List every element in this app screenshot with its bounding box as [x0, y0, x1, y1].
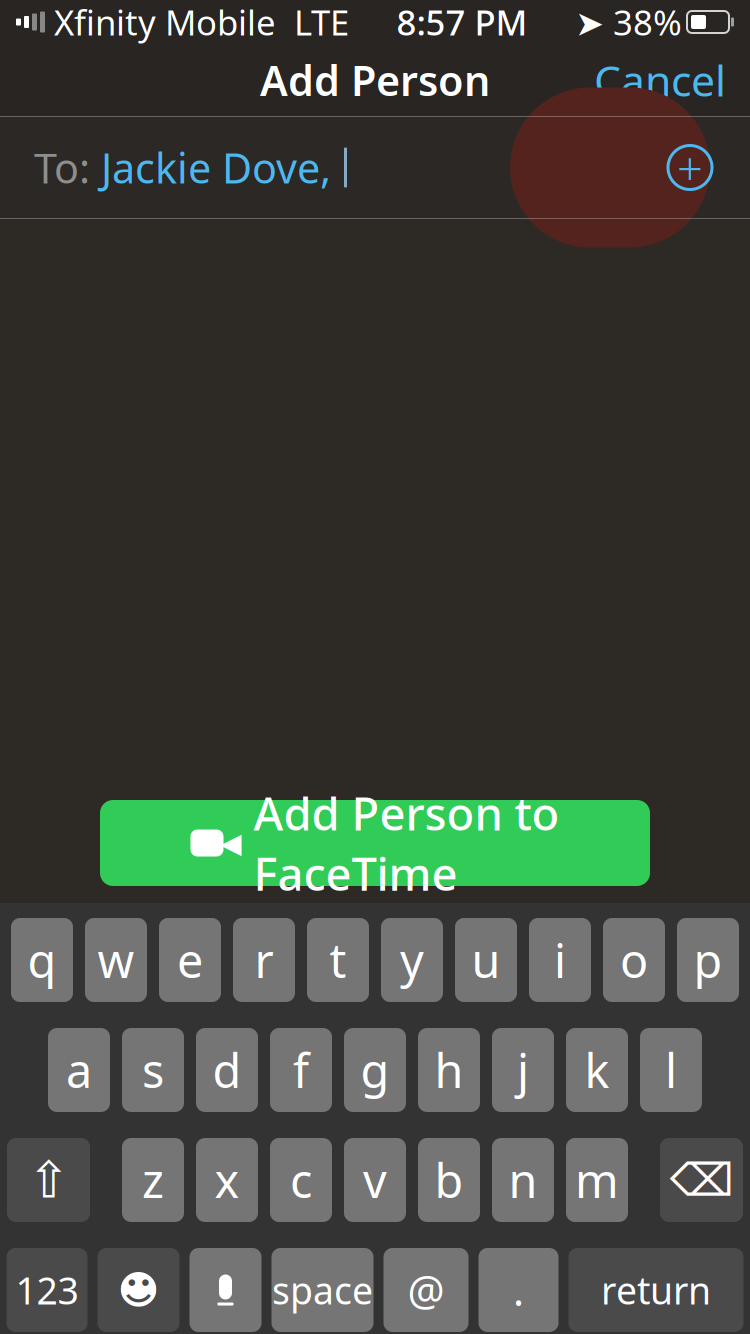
button[interactable]: ◀ — [100, 800, 650, 886]
staticText: t — [329, 929, 346, 991]
staticText: 8:57 PM — [396, 0, 527, 45]
staticText: + — [677, 137, 703, 198]
button[interactable]: w — [85, 918, 147, 1002]
staticText: ⇧ — [27, 1151, 69, 1209]
staticText: c — [290, 1149, 312, 1211]
button[interactable]: u — [455, 918, 517, 1002]
staticText: w — [97, 929, 134, 991]
staticText: i — [554, 929, 566, 991]
staticText: z — [142, 1149, 164, 1211]
staticText: e — [177, 929, 203, 991]
staticText: s — [142, 1039, 164, 1101]
staticText: Cancel — [594, 52, 726, 108]
staticText: g — [360, 1039, 389, 1101]
staticText: . — [513, 1263, 524, 1317]
staticText: Add Person to FaceTime — [253, 783, 559, 903]
button[interactable]: x — [196, 1138, 258, 1222]
staticText: r — [254, 929, 273, 991]
staticText: Jackie Dove, — [90, 140, 331, 195]
button[interactable]: Delete — [660, 1138, 743, 1222]
staticText: n — [508, 1149, 537, 1211]
button[interactable]: z — [122, 1138, 184, 1222]
staticText: Add Person — [260, 53, 490, 107]
button[interactable]: q — [11, 918, 73, 1002]
staticText: ➤ 38% — [575, 0, 682, 45]
button[interactable]: g — [344, 1028, 406, 1112]
button[interactable]: i — [529, 918, 591, 1002]
staticText: m — [575, 1149, 619, 1211]
button[interactable]: f — [270, 1028, 332, 1112]
staticText: f — [293, 1039, 309, 1101]
button[interactable]: p — [677, 918, 739, 1002]
staticText: x — [214, 1149, 239, 1211]
staticText: o — [620, 929, 648, 991]
button[interactable]: a — [48, 1028, 110, 1112]
button[interactable]: o — [603, 918, 665, 1002]
button[interactable]: k — [566, 1028, 628, 1112]
staticText: @ — [407, 1263, 444, 1317]
staticText: d — [212, 1039, 241, 1101]
button[interactable]: Shift — [7, 1138, 90, 1222]
button[interactable]: @ — [383, 1248, 468, 1332]
staticText: ⌫ — [669, 1154, 733, 1206]
button[interactable]: j — [492, 1028, 554, 1112]
staticText: q — [27, 929, 56, 991]
staticText: b — [434, 1149, 463, 1211]
staticText: u — [471, 929, 500, 991]
button[interactable]: h — [418, 1028, 480, 1112]
staticText: To: — [34, 140, 90, 195]
staticText: l — [665, 1039, 677, 1101]
button[interactable]: Dictate — [189, 1248, 261, 1332]
button[interactable]: s — [122, 1028, 184, 1112]
button[interactable]: Emoji — [97, 1248, 179, 1332]
button[interactable]: c — [270, 1138, 332, 1222]
button[interactable]: return — [568, 1248, 743, 1332]
button[interactable]: t — [307, 918, 369, 1002]
staticText: j — [517, 1039, 529, 1101]
button[interactable]: Cancel — [582, 40, 738, 120]
staticText: return — [601, 1265, 711, 1315]
button[interactable]: e — [159, 918, 221, 1002]
staticText: v — [363, 1149, 387, 1211]
button[interactable]: m — [566, 1138, 628, 1222]
staticText: ☺ — [113, 1263, 163, 1317]
staticText: h — [434, 1039, 463, 1101]
button[interactable]: d — [196, 1028, 258, 1112]
button[interactable]: n — [492, 1138, 554, 1222]
button[interactable]: Add contact — [659, 136, 721, 198]
button[interactable]: 123 — [6, 1248, 87, 1332]
staticText: ◀ — [220, 827, 242, 859]
staticText: Xfinity Mobile LTE — [45, 0, 349, 45]
button[interactable]: b — [418, 1138, 480, 1222]
button[interactable]: y — [381, 918, 443, 1002]
button[interactable]: r — [233, 918, 295, 1002]
staticText: y — [400, 929, 424, 991]
staticText: a — [66, 1039, 92, 1101]
button[interactable]: space — [271, 1248, 373, 1332]
staticText: 123 — [15, 1265, 78, 1315]
button[interactable]: . — [478, 1248, 558, 1332]
button[interactable]: v — [344, 1138, 406, 1222]
staticText: space — [272, 1265, 373, 1315]
staticText: k — [584, 1039, 609, 1101]
staticText: p — [693, 929, 722, 991]
button[interactable]: l — [640, 1028, 702, 1112]
